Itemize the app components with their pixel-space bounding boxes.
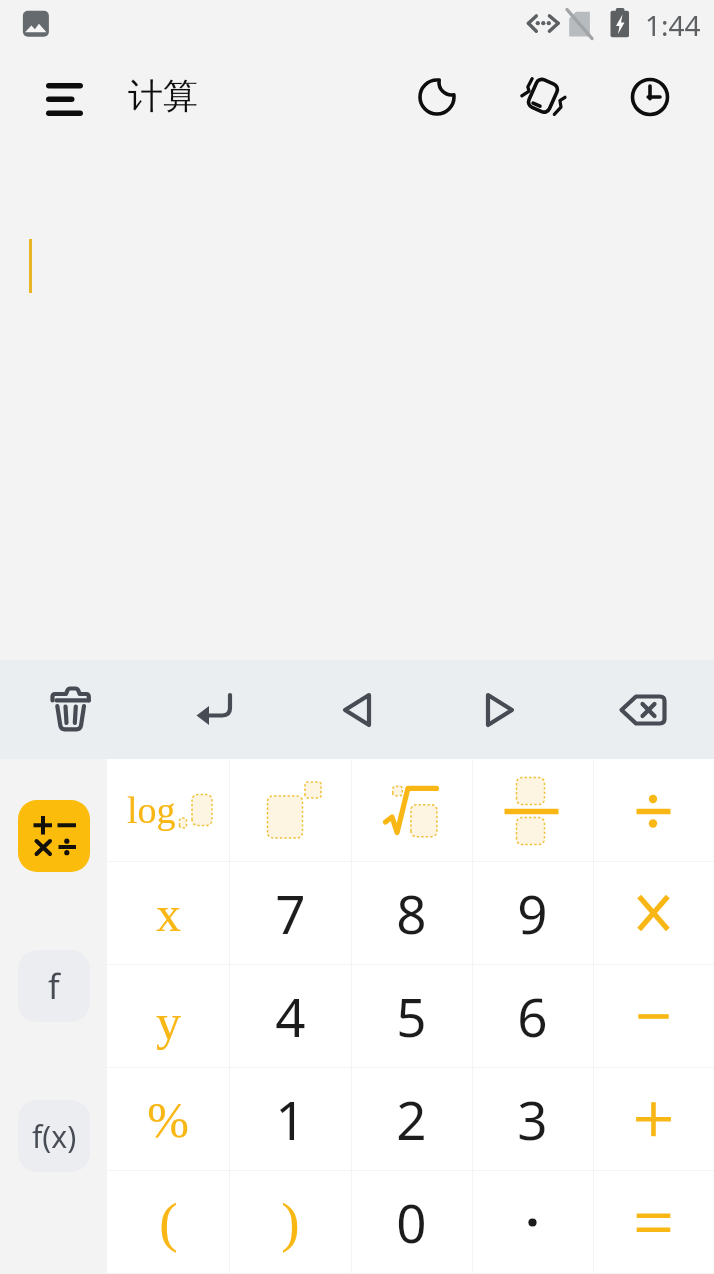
button[interactable]: Move right [428,660,571,759]
staticText: ) [281,1192,300,1253]
button[interactable]: 8 [351,862,472,964]
button[interactable] [593,1171,714,1273]
button[interactable] [229,759,351,861]
staticText: 4 [275,980,306,1052]
button[interactable]: 9 [472,862,593,964]
button[interactable] [472,1171,593,1273]
staticText: 计算 [128,74,198,118]
staticText: 0 [396,1186,427,1258]
button[interactable]: f [18,950,90,1022]
staticText: 3 [517,1083,548,1155]
staticText: log [127,789,176,831]
button[interactable]: Night mode [401,61,473,133]
button[interactable]: % [107,1068,229,1170]
button[interactable] [593,759,714,861]
staticText: ( [159,1192,178,1253]
button[interactable] [593,1068,714,1170]
staticText: 5 [396,980,427,1052]
staticText: f(x) [32,1116,77,1157]
staticText: 9 [517,877,548,949]
button[interactable]: 5 [351,965,472,1067]
button[interactable] [351,759,472,861]
button[interactable] [593,965,714,1067]
button[interactable]: Clear [0,660,142,759]
staticText: f [48,963,60,1009]
button[interactable]: 0 [351,1171,472,1273]
button[interactable]: 6 [472,965,593,1067]
staticText: 1:44 [645,6,701,44]
button[interactable]: ( [107,1171,229,1273]
staticText: 7 [275,877,306,949]
button[interactable]: Keypad tab [18,800,90,872]
button[interactable]: History [614,61,686,133]
button[interactable]: 2 [351,1068,472,1170]
button[interactable]: 1 [229,1068,351,1170]
staticText: y [156,994,181,1049]
staticText: x [156,886,181,941]
button[interactable] [593,862,714,964]
button[interactable]: log [107,759,229,861]
button[interactable]: 7 [229,862,351,964]
button[interactable]: Move left [285,660,428,759]
button[interactable]: Menu [27,63,101,135]
staticText: 1 [275,1083,306,1155]
button[interactable]: Shake to clear [507,61,579,133]
button[interactable]: 4 [229,965,351,1067]
button[interactable]: y [107,965,229,1067]
button[interactable]: f(x) [18,1100,90,1172]
button[interactable]: 3 [472,1068,593,1170]
staticText: 8 [396,877,427,949]
button[interactable]: ) [229,1171,351,1273]
button[interactable]: x [107,862,229,964]
staticText: % [147,1092,189,1147]
staticText: 6 [517,980,548,1052]
button[interactable]: Enter [142,660,285,759]
button[interactable] [472,759,593,861]
staticText: 2 [396,1083,427,1155]
button[interactable]: Backspace [571,660,714,759]
